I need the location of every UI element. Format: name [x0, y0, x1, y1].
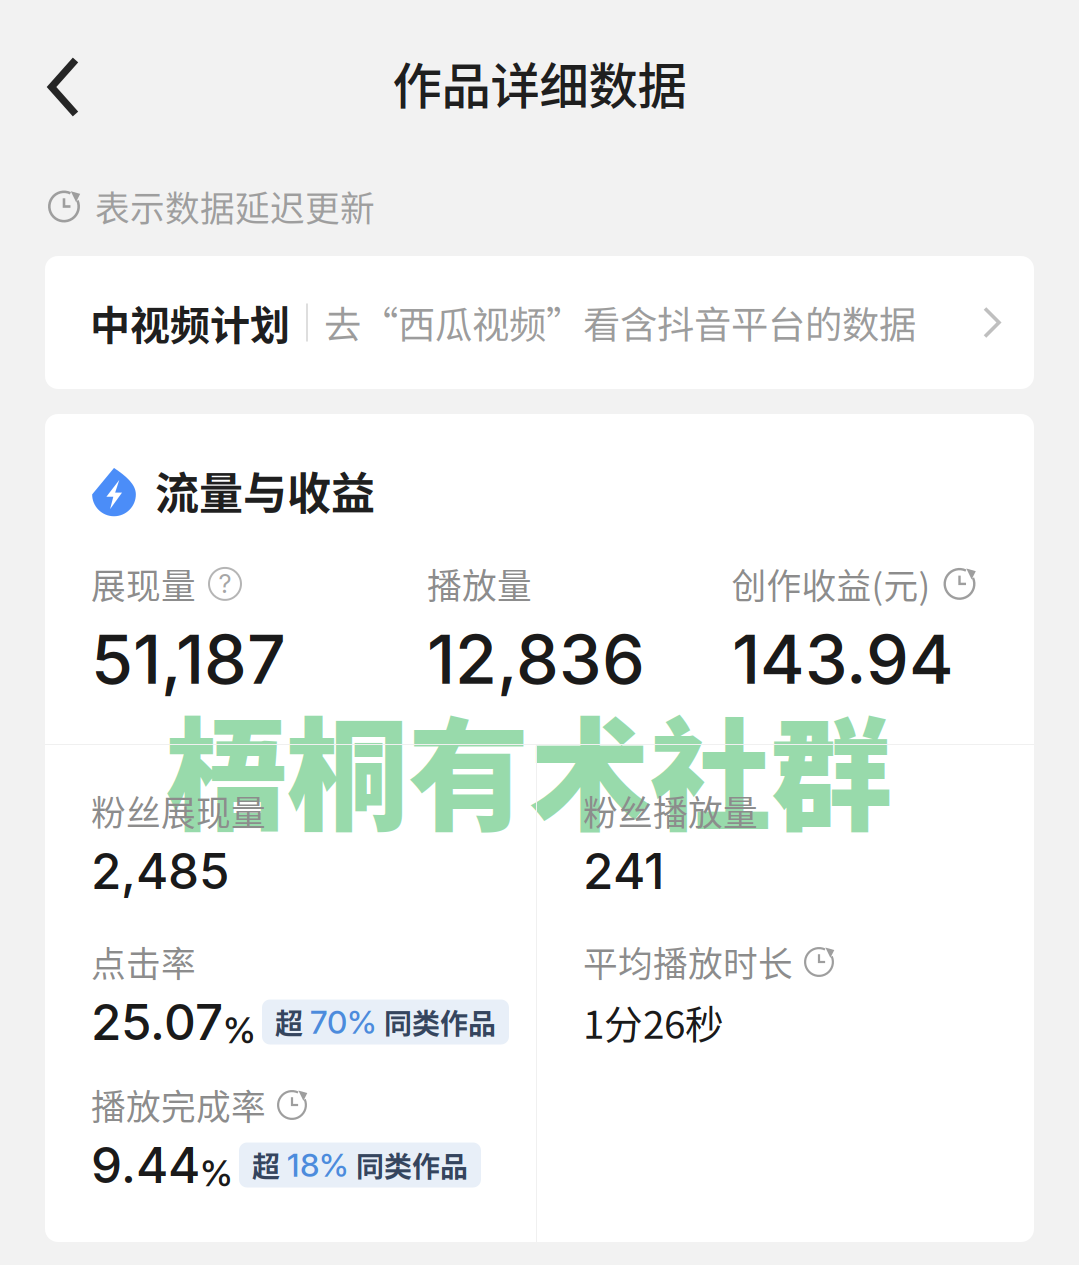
staticText: 作品详细数据 — [392, 47, 686, 118]
staticText: 播放完成率 — [91, 1080, 266, 1130]
staticText: 超 — [275, 1002, 303, 1042]
staticText: 播放量 — [427, 559, 532, 609]
staticText: 12,836 — [427, 618, 645, 700]
staticText: % — [200, 1151, 233, 1195]
staticText: 展现量 — [91, 559, 196, 609]
staticText: 同类作品 — [384, 1002, 496, 1042]
button[interactable]: Back — [0, 22, 120, 142]
staticText: 点击率 — [91, 937, 196, 987]
staticText: 平均播放时长 — [583, 937, 793, 987]
staticText: 18% — [287, 1146, 349, 1184]
staticText: 表示数据延迟更新 — [95, 181, 375, 232]
staticText: ? — [218, 569, 231, 599]
staticText: 流量与收益 — [155, 459, 375, 522]
staticText: 143.94 — [732, 618, 954, 700]
staticText: 去“西瓜视频”看含抖音平台的数据 — [324, 295, 916, 350]
staticText: 70% — [310, 1003, 377, 1041]
staticText: 51,187 — [91, 618, 286, 700]
staticText: 粉丝展现量 — [91, 786, 266, 836]
staticText: 梧桐有术社群 — [166, 679, 892, 855]
staticText: 241 — [583, 841, 664, 901]
staticText: 超 — [252, 1145, 280, 1185]
staticText: 2,485 — [91, 841, 229, 901]
staticText: 粉丝播放量 — [583, 786, 758, 836]
staticText: 中视频计划 — [90, 293, 290, 351]
staticText: 创作收益(元) — [731, 559, 930, 609]
staticText: 同类作品 — [356, 1145, 468, 1185]
staticText: 1分26秒 — [583, 994, 724, 1050]
staticText: 25.07 — [91, 992, 223, 1052]
staticText: 9.44 — [91, 1135, 200, 1195]
button[interactable]: 中视频计划 — [45, 256, 1034, 389]
staticText: % — [223, 1008, 256, 1052]
